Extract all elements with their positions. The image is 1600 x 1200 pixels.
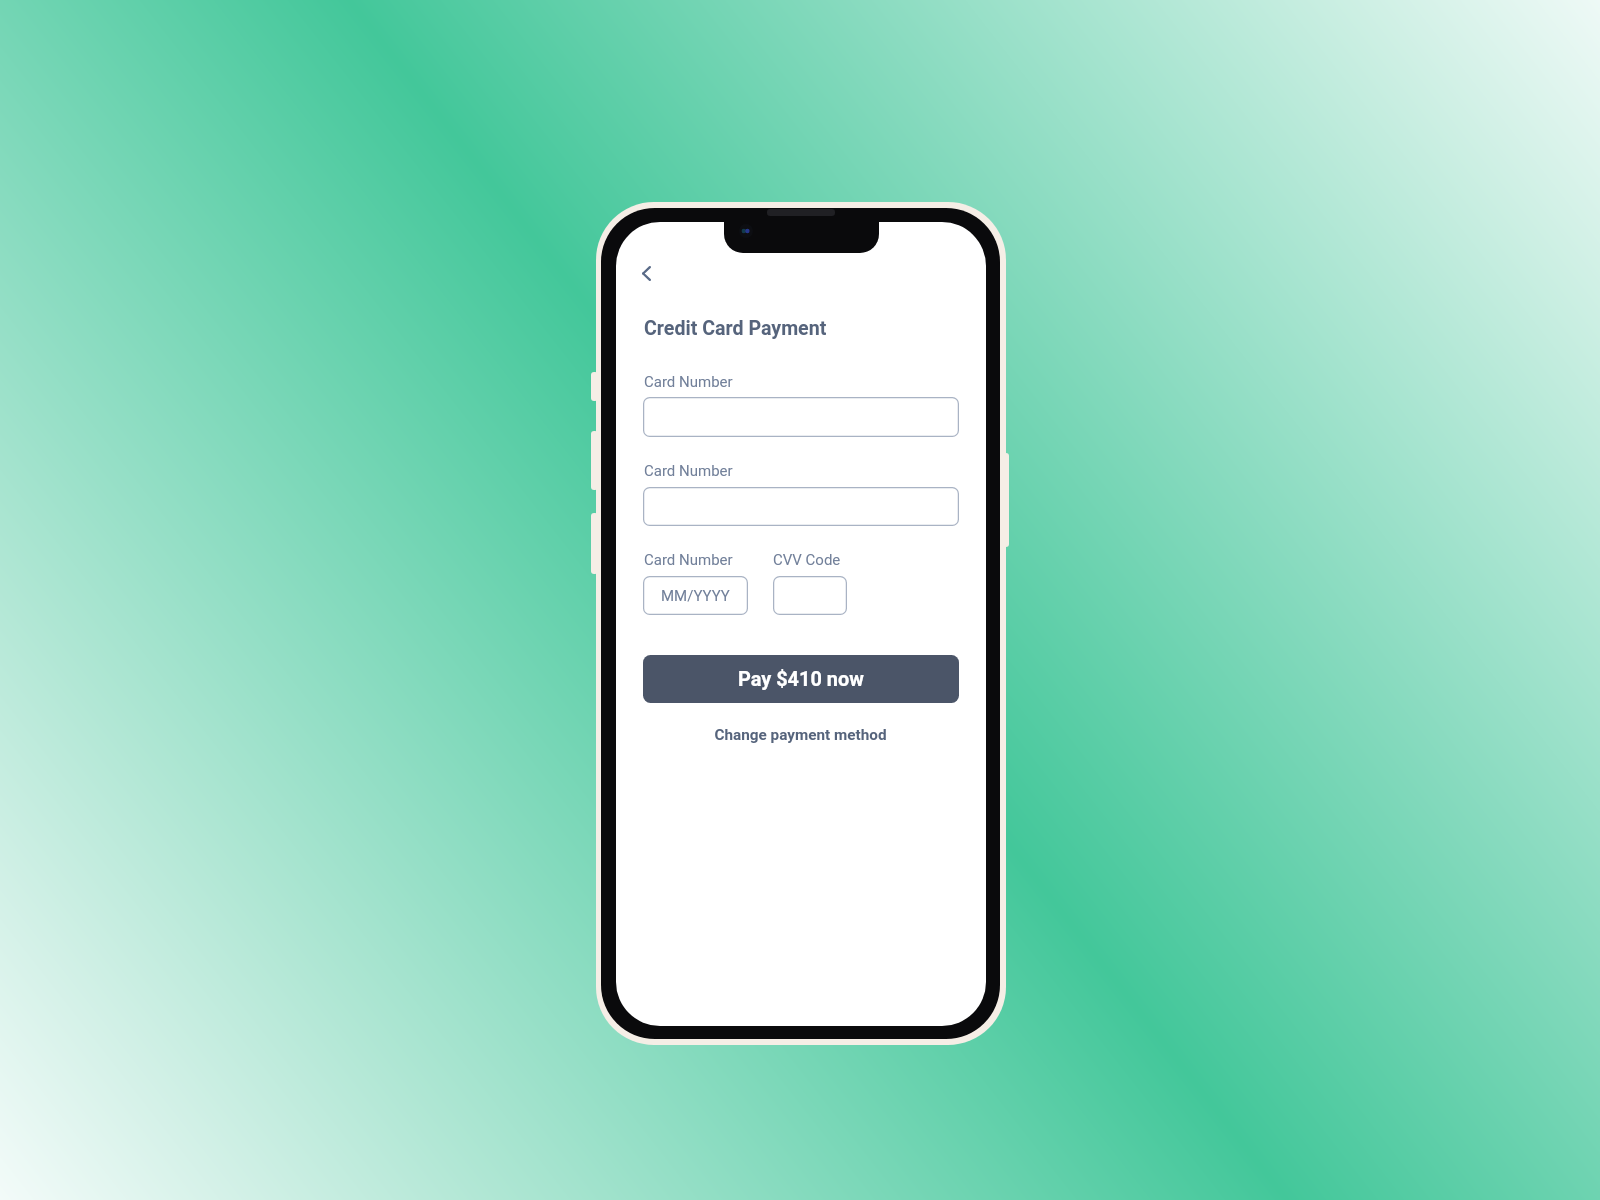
staticText: Card Number <box>644 373 733 391</box>
staticText: MM/YYYY <box>661 587 730 605</box>
button[interactable] <box>773 576 847 615</box>
staticText: Pay $410 now <box>738 668 864 691</box>
button[interactable] <box>643 487 959 526</box>
staticText: CVV Code <box>773 551 841 569</box>
staticText: Card Number <box>644 462 733 480</box>
button[interactable]: MM/YYYY <box>643 576 748 615</box>
staticText: Credit Card Payment <box>644 317 827 340</box>
button[interactable] <box>643 397 959 437</box>
button[interactable]: Change payment method <box>643 722 958 748</box>
staticText: Card Number <box>644 551 733 569</box>
button[interactable]: Back <box>628 255 664 291</box>
staticText: Change payment method <box>714 726 887 744</box>
button[interactable]: Pay $410 now <box>643 655 959 703</box>
